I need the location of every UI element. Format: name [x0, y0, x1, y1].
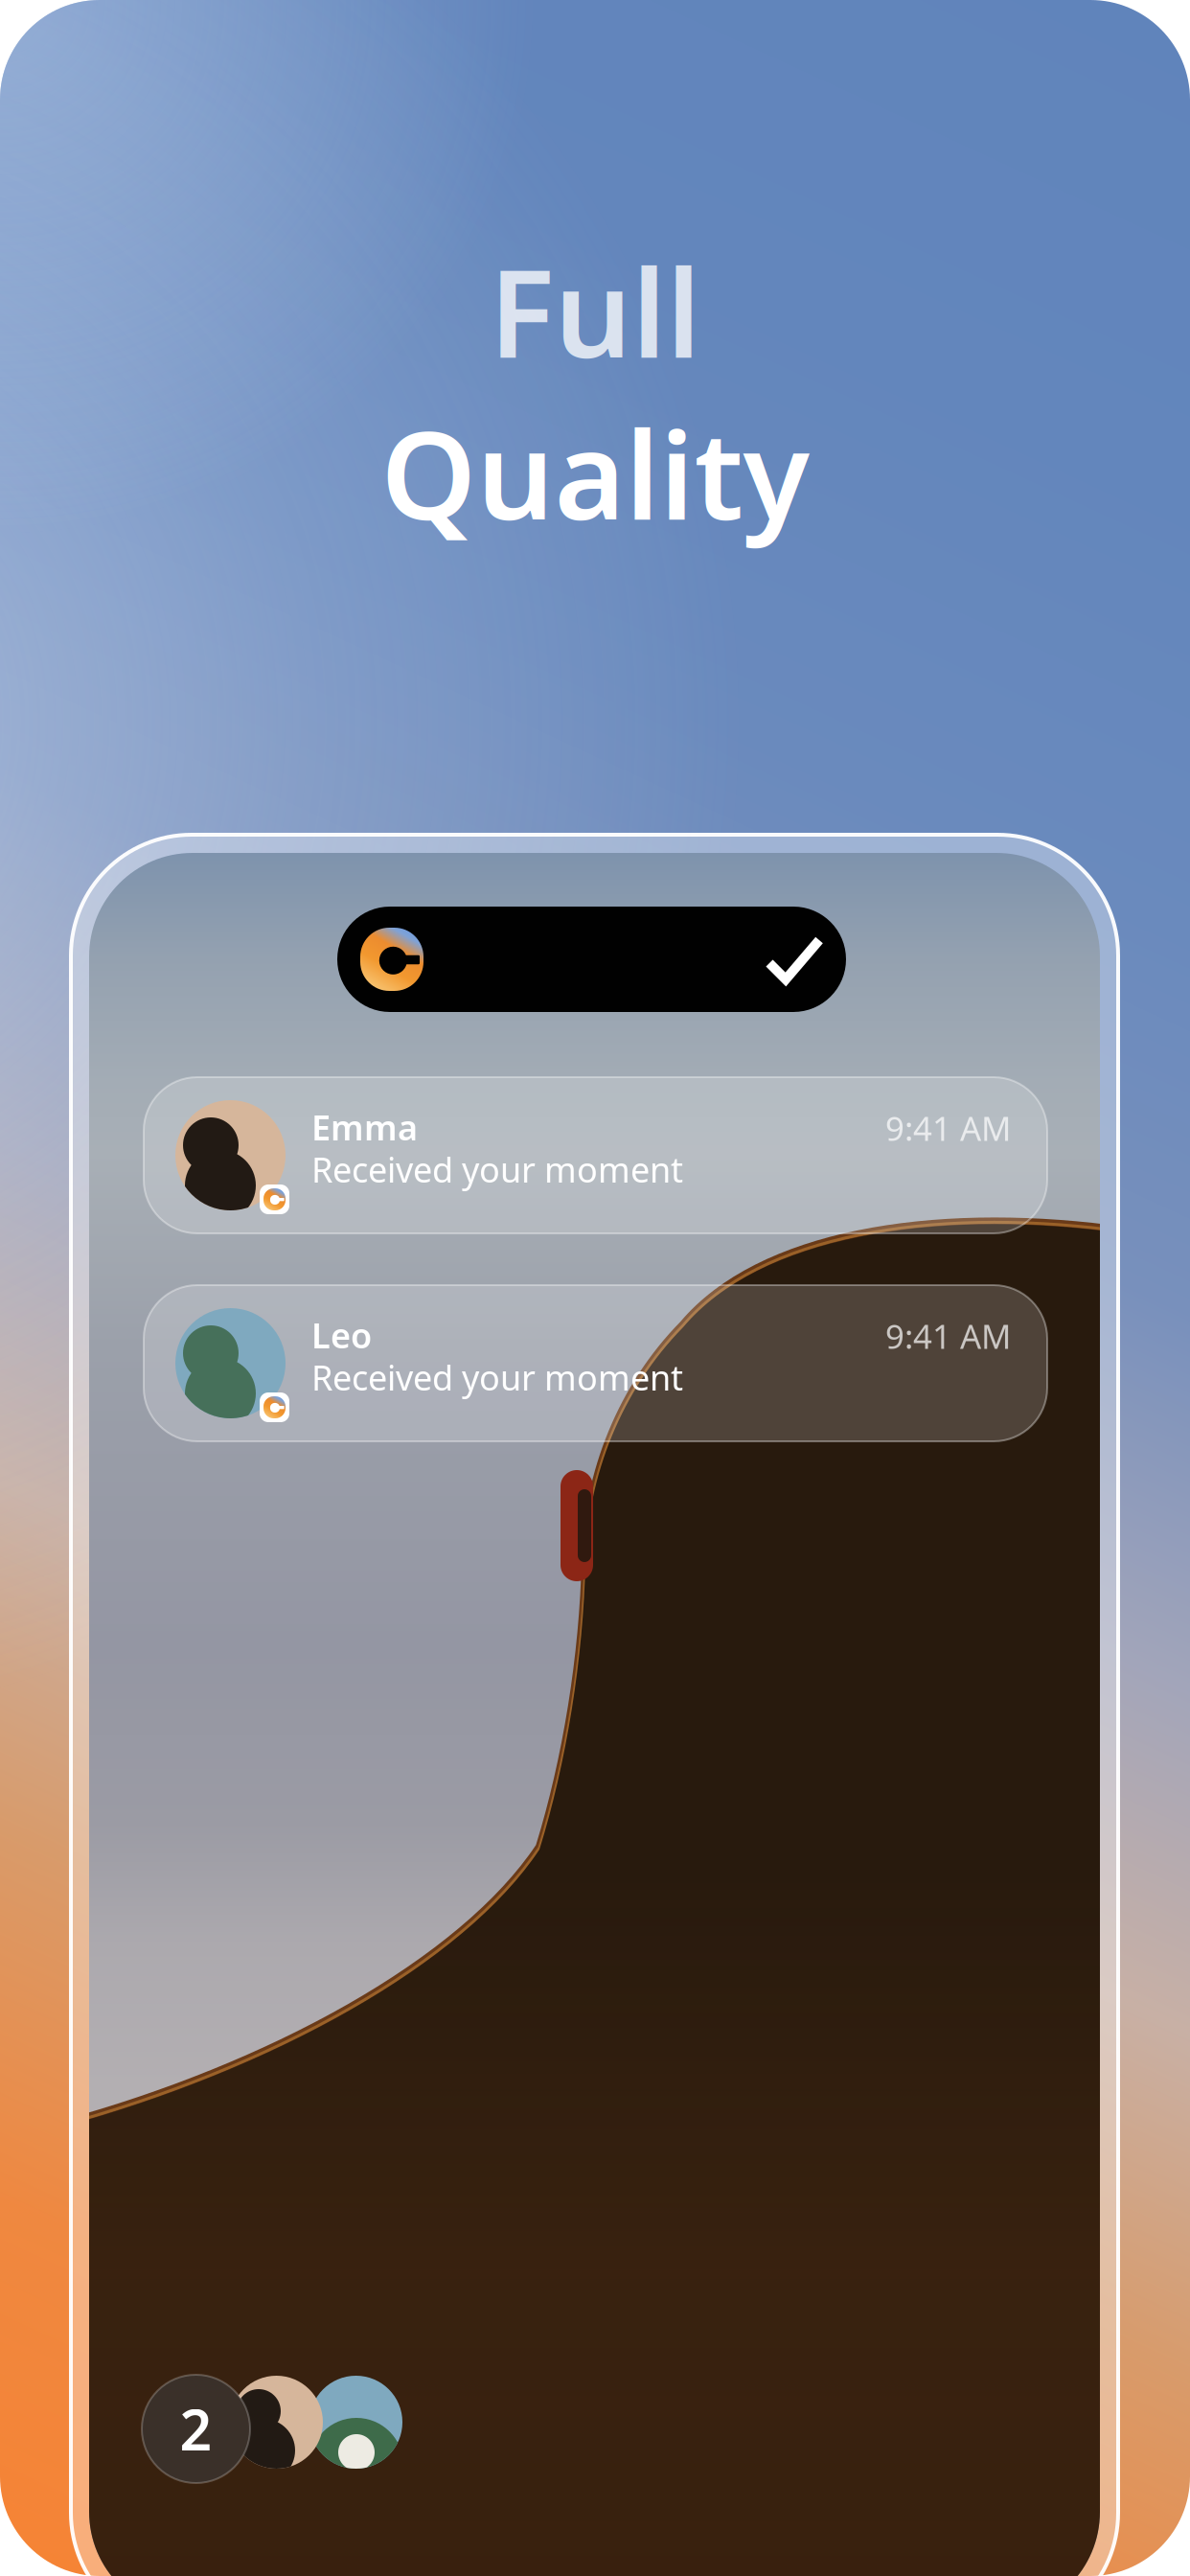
staticText: 2: [180, 2392, 212, 2466]
button[interactable]: Emma: [144, 1077, 1047, 1233]
button[interactable]: Live Activity: moment delivered: [337, 907, 846, 1012]
staticText: Received your moment: [311, 1354, 683, 1400]
staticText: 9:41 AM: [885, 1106, 1011, 1150]
staticText: Full: [489, 230, 701, 391]
button[interactable]: Leo: [144, 1285, 1047, 1441]
button[interactable]: 2 recipients: [142, 2375, 420, 2486]
staticText: Received your moment: [311, 1146, 683, 1192]
staticText: Quality: [381, 392, 809, 553]
staticText: Emma: [311, 1104, 418, 1150]
staticText: Leo: [311, 1312, 372, 1358]
staticText: 9:41 AM: [885, 1314, 1011, 1358]
